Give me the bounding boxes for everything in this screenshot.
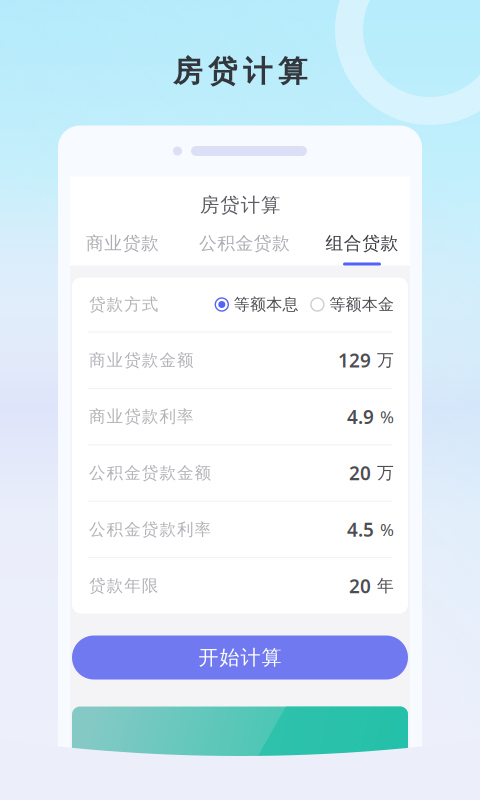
staticText: 20 <box>349 460 371 486</box>
staticText: 等额本金 <box>329 294 394 315</box>
button[interactable]: 开始计算 <box>72 635 408 679</box>
staticText: 20 <box>349 573 371 599</box>
staticText: 开始计算 <box>198 645 281 670</box>
staticText: 贷款年限 <box>89 575 159 596</box>
staticText: 等额本息 <box>234 294 298 315</box>
button[interactable]: 组合贷款 <box>319 224 404 265</box>
staticText: 公积金贷款利率 <box>89 519 212 540</box>
staticText: 年 <box>377 575 394 596</box>
staticText: % <box>380 405 394 428</box>
staticText: 贷款方式 <box>89 294 159 315</box>
staticText: 房贷计算 <box>200 193 280 217</box>
staticText: % <box>380 518 394 541</box>
button[interactable]: 商业贷款金额 <box>72 332 408 388</box>
staticText: 公积金贷款 <box>199 232 290 254</box>
button[interactable]: 商业贷款利率 <box>72 389 408 444</box>
button[interactable]: 等额本息 <box>215 294 298 315</box>
staticText: 组合贷款 <box>326 232 398 254</box>
staticText: 129 <box>338 347 371 373</box>
staticText: 商业贷款金额 <box>89 350 194 371</box>
button[interactable]: 商业贷款 <box>75 224 169 265</box>
staticText: 商业贷款 <box>86 232 159 254</box>
button[interactable]: 等额本金 <box>310 294 394 315</box>
staticText: 公积金贷款金额 <box>89 463 212 483</box>
staticText: 万 <box>377 462 394 484</box>
button[interactable]: 贷款年限 <box>72 558 408 613</box>
button[interactable]: 公积金贷款 <box>169 224 319 265</box>
staticText: 4.5 <box>347 516 374 542</box>
button[interactable]: 公积金贷款利率 <box>72 502 408 557</box>
staticText: 万 <box>377 350 394 371</box>
button[interactable]: 公积金贷款金额 <box>72 445 408 501</box>
staticText: 商业贷款利率 <box>89 406 194 427</box>
staticText: 房贷计算 <box>173 53 307 89</box>
staticText: 4.9 <box>347 404 374 429</box>
